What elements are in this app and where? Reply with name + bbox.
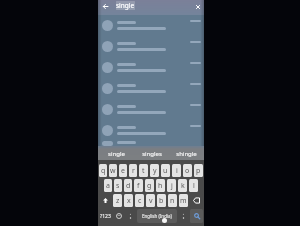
button[interactable]: f [134, 179, 143, 192]
button[interactable]: ?123 [99, 209, 112, 223]
button[interactable] [98, 99, 204, 120]
staticText: d [126, 181, 131, 191]
staticText: a [106, 181, 110, 191]
staticText: shingle [176, 150, 197, 158]
button[interactable] [126, 209, 135, 223]
button[interactable] [98, 78, 204, 99]
button[interactable]: shingle [169, 148, 204, 160]
button[interactable]: y [150, 164, 159, 177]
button[interactable]: b [157, 194, 166, 207]
staticText: q [101, 166, 106, 176]
button[interactable]: Search [190, 209, 203, 223]
button[interactable]: Emoji [114, 209, 124, 223]
button[interactable]: English (India) [137, 209, 177, 223]
button[interactable]: singles [134, 148, 169, 160]
button[interactable]: Back [101, 2, 110, 11]
button[interactable]: h [156, 179, 165, 192]
staticText: w [110, 166, 116, 176]
button[interactable]: x [124, 194, 133, 207]
button[interactable] [98, 36, 204, 57]
staticText: singles [142, 150, 162, 158]
staticText: c [138, 196, 142, 206]
button[interactable]: w [109, 164, 117, 177]
button[interactable]: u [161, 164, 170, 177]
button[interactable]: g [145, 179, 154, 192]
button[interactable]: i [172, 164, 181, 177]
button[interactable]: a [104, 179, 112, 192]
staticText: e [121, 166, 125, 176]
staticText: m [180, 196, 187, 206]
staticText: x [127, 196, 131, 206]
button[interactable]: v [146, 194, 155, 207]
staticText: h [158, 181, 163, 191]
staticText: ?123 [100, 213, 111, 220]
staticText: o [185, 166, 190, 176]
staticText: English (India) [142, 213, 172, 219]
button[interactable]: z [113, 194, 122, 207]
staticText: single [116, 1, 135, 10]
staticText: y [153, 166, 157, 176]
staticText: t [142, 166, 145, 176]
staticText: s [116, 181, 120, 191]
button[interactable] [98, 15, 204, 36]
button[interactable]: t [139, 164, 148, 177]
button[interactable]: c [135, 194, 144, 207]
staticText: k [181, 181, 185, 191]
button[interactable]: p [194, 164, 203, 177]
button[interactable]: single [98, 148, 134, 160]
button[interactable]: n [168, 194, 177, 207]
button[interactable]: Backspace [190, 194, 203, 207]
staticText: l [193, 181, 195, 191]
staticText: g [147, 181, 152, 191]
button[interactable]: s [114, 179, 122, 192]
staticText: p [196, 166, 201, 176]
button[interactable] [98, 120, 204, 141]
staticText: f [137, 181, 140, 191]
button[interactable]: e [119, 164, 127, 177]
staticText: b [159, 196, 164, 206]
button[interactable]: d [124, 179, 132, 192]
button[interactable]: Clear search [193, 2, 202, 11]
button[interactable]: j [167, 179, 176, 192]
staticText: single [108, 150, 125, 158]
staticText: i [176, 166, 178, 176]
staticText: u [163, 166, 168, 176]
button[interactable]: Shift [99, 194, 111, 207]
button[interactable]: r [129, 164, 137, 177]
button[interactable]: q [99, 164, 107, 177]
button[interactable]: m [179, 194, 188, 207]
staticText: z [116, 196, 120, 206]
button[interactable]: o [183, 164, 192, 177]
staticText: n [170, 196, 175, 206]
button[interactable] [98, 141, 204, 146]
button[interactable] [98, 57, 204, 78]
button[interactable]: l [189, 179, 198, 192]
staticText: v [149, 196, 153, 206]
staticText: r [132, 166, 135, 176]
button[interactable]: k [178, 179, 187, 192]
staticText: j [171, 181, 173, 191]
button[interactable] [179, 209, 188, 223]
